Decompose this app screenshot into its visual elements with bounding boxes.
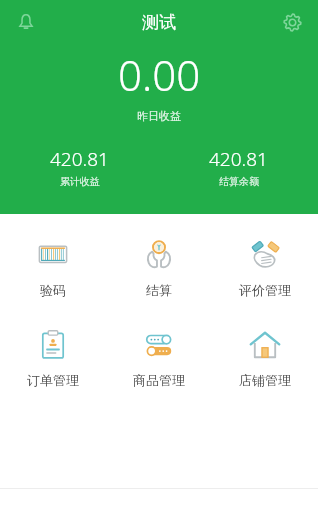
button[interactable]: 店铺管理: [212, 324, 318, 392]
button[interactable]: 订单管理: [0, 324, 106, 392]
staticText: 验码: [40, 282, 66, 298]
staticText: 昨日收益: [137, 109, 181, 123]
button[interactable]: 420.81: [159, 146, 318, 188]
staticText: 商品管理: [133, 372, 185, 388]
staticText: 订单管理: [27, 372, 79, 388]
button[interactable]: Settings: [274, 4, 310, 40]
button[interactable]: 420.81: [0, 146, 159, 188]
staticText: 0.00: [118, 46, 201, 103]
button[interactable]: 结算: [106, 234, 212, 302]
button[interactable]: 商品管理: [106, 324, 212, 392]
staticText: 420.81: [209, 146, 268, 172]
staticText: 测试: [142, 12, 176, 33]
button[interactable]: 评价管理: [212, 234, 318, 302]
staticText: 420.81: [50, 146, 109, 172]
staticText: 店铺管理: [239, 372, 291, 388]
staticText: 累计收益: [60, 175, 100, 188]
button[interactable]: Notifications: [8, 4, 44, 40]
staticText: 结算余额: [219, 175, 259, 188]
button[interactable]: 验码: [0, 234, 106, 302]
staticText: 评价管理: [239, 282, 291, 298]
staticText: 结算: [146, 282, 172, 298]
